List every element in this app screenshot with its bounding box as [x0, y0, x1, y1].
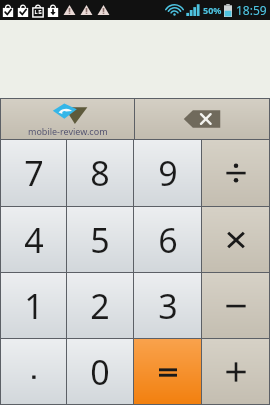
button[interactable]: 1	[1, 273, 66, 338]
staticText: 2	[90, 283, 110, 329]
staticText: 4	[24, 217, 44, 263]
staticText: 7	[24, 150, 44, 196]
button[interactable]	[202, 207, 269, 272]
button[interactable]	[202, 339, 269, 404]
staticText: mobile-review.com	[28, 125, 108, 137]
staticText: 18:59	[236, 2, 267, 18]
button[interactable]: 6	[134, 207, 201, 272]
button[interactable]: Backspace	[135, 99, 269, 139]
button[interactable]: 5	[67, 207, 133, 272]
button[interactable]	[134, 339, 201, 404]
button[interactable]: 8	[67, 140, 133, 206]
button[interactable]	[202, 273, 269, 338]
button[interactable]: mobile-review.com	[1, 99, 134, 139]
button[interactable]: 9	[134, 140, 201, 206]
button[interactable]: 3	[134, 273, 201, 338]
button[interactable]: 7	[1, 140, 66, 206]
staticText: 8	[90, 150, 110, 196]
staticText: 9	[158, 150, 178, 196]
staticText: 50%	[203, 4, 222, 16]
staticText: 0	[90, 349, 110, 395]
button[interactable]	[202, 140, 269, 206]
button[interactable]: 0	[67, 339, 133, 404]
staticText: 6	[158, 217, 178, 263]
staticText: 3	[158, 283, 178, 329]
button[interactable]: 4	[1, 207, 66, 272]
staticText: 5	[90, 217, 110, 263]
button[interactable]	[1, 339, 66, 404]
staticText: 1	[24, 283, 44, 329]
button[interactable]: 2	[67, 273, 133, 338]
